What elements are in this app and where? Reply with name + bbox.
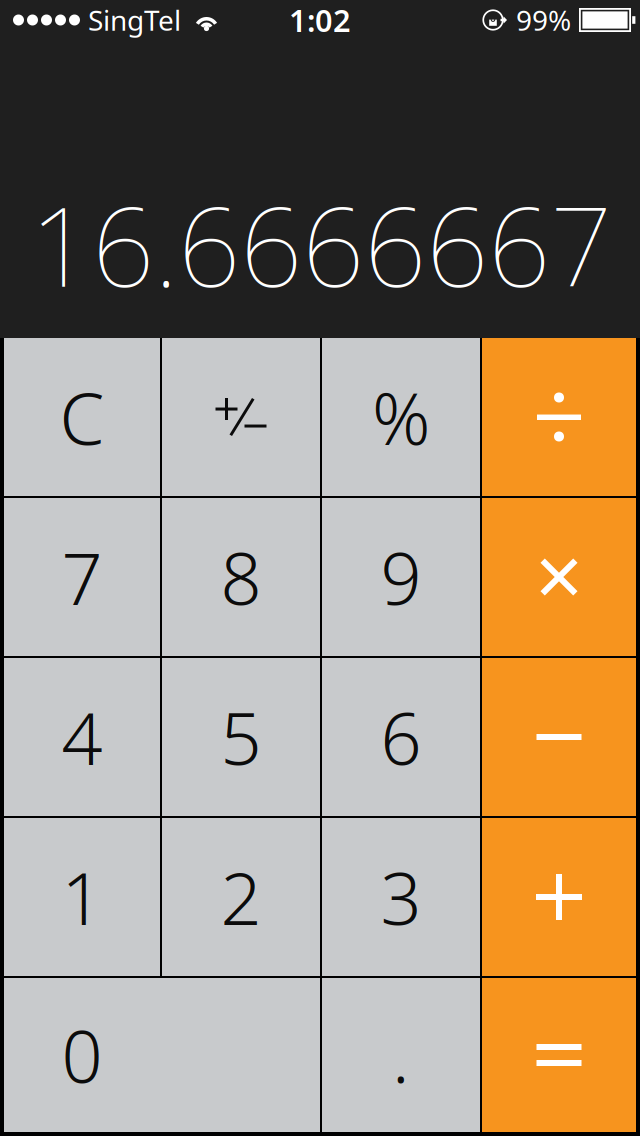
button[interactable]: 2 (162, 818, 320, 976)
button[interactable]: 8 (162, 498, 320, 656)
button[interactable]: % (322, 338, 480, 496)
button[interactable]: . (322, 978, 480, 1132)
staticText: 1 (61, 849, 102, 945)
button[interactable]: 6 (322, 658, 480, 816)
staticText: 5 (220, 689, 261, 785)
button[interactable]: 0 (4, 978, 320, 1132)
button[interactable]: Divide (482, 338, 636, 496)
button[interactable]: Multiply (482, 498, 636, 656)
staticText: 3 (380, 849, 421, 945)
staticText: 0 (61, 1007, 102, 1103)
button[interactable]: 3 (322, 818, 480, 976)
button[interactable]: Minus (482, 658, 636, 816)
staticText: C (59, 369, 104, 465)
staticText: 4 (61, 689, 102, 785)
button[interactable]: 4 (4, 658, 160, 816)
button[interactable]: Equals (482, 978, 636, 1132)
button[interactable]: 1 (4, 818, 160, 976)
button[interactable]: Plus (482, 818, 636, 976)
button[interactable]: Plus minus (162, 338, 320, 496)
staticText: 16.6666667 (30, 172, 612, 317)
staticText: 2 (220, 849, 261, 945)
staticText: SingTel (88, 1, 181, 39)
staticText: . (392, 1007, 410, 1103)
staticText: 9 (380, 529, 421, 625)
staticText: 7 (61, 529, 102, 625)
staticText: % (372, 369, 430, 465)
button[interactable]: C (4, 338, 160, 496)
staticText: 6 (380, 689, 421, 785)
staticText: 99% (516, 1, 571, 39)
button[interactable]: 5 (162, 658, 320, 816)
button[interactable]: 9 (322, 498, 480, 656)
staticText: 8 (220, 529, 261, 625)
button[interactable]: 7 (4, 498, 160, 656)
staticText: 1:02 (289, 0, 351, 40)
